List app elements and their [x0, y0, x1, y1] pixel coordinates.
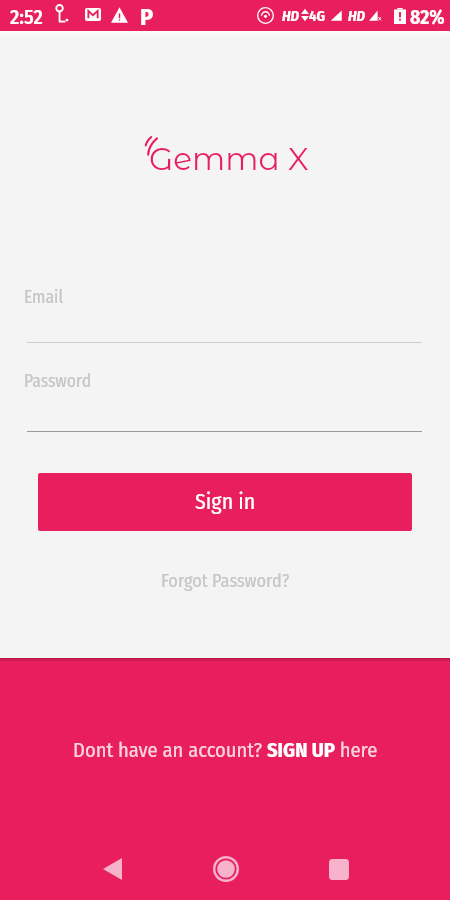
staticText: Sign in	[195, 489, 256, 515]
button[interactable]: Recent apps	[315, 839, 363, 899]
staticText: HD	[282, 7, 300, 24]
staticText: Forgot Password?	[161, 570, 290, 592]
button[interactable]: Dont have an account? SIGN UP here	[63, 732, 388, 769]
staticText: HD	[348, 7, 366, 24]
button[interactable]: Home	[202, 839, 250, 899]
staticText: 4G	[309, 7, 326, 24]
button[interactable]: Back	[88, 839, 136, 899]
button[interactable]: Forgot Password?	[151, 566, 300, 596]
staticText: Password	[24, 371, 92, 392]
staticText: 2:52	[10, 5, 43, 30]
staticText: P	[140, 3, 154, 32]
staticText: 82%	[410, 6, 445, 29]
staticText: Email	[24, 287, 64, 308]
staticText: Gemma X	[149, 140, 309, 178]
button[interactable]: Sign in	[38, 473, 412, 531]
staticText: Dont have an account? SIGN UP here	[73, 738, 378, 763]
